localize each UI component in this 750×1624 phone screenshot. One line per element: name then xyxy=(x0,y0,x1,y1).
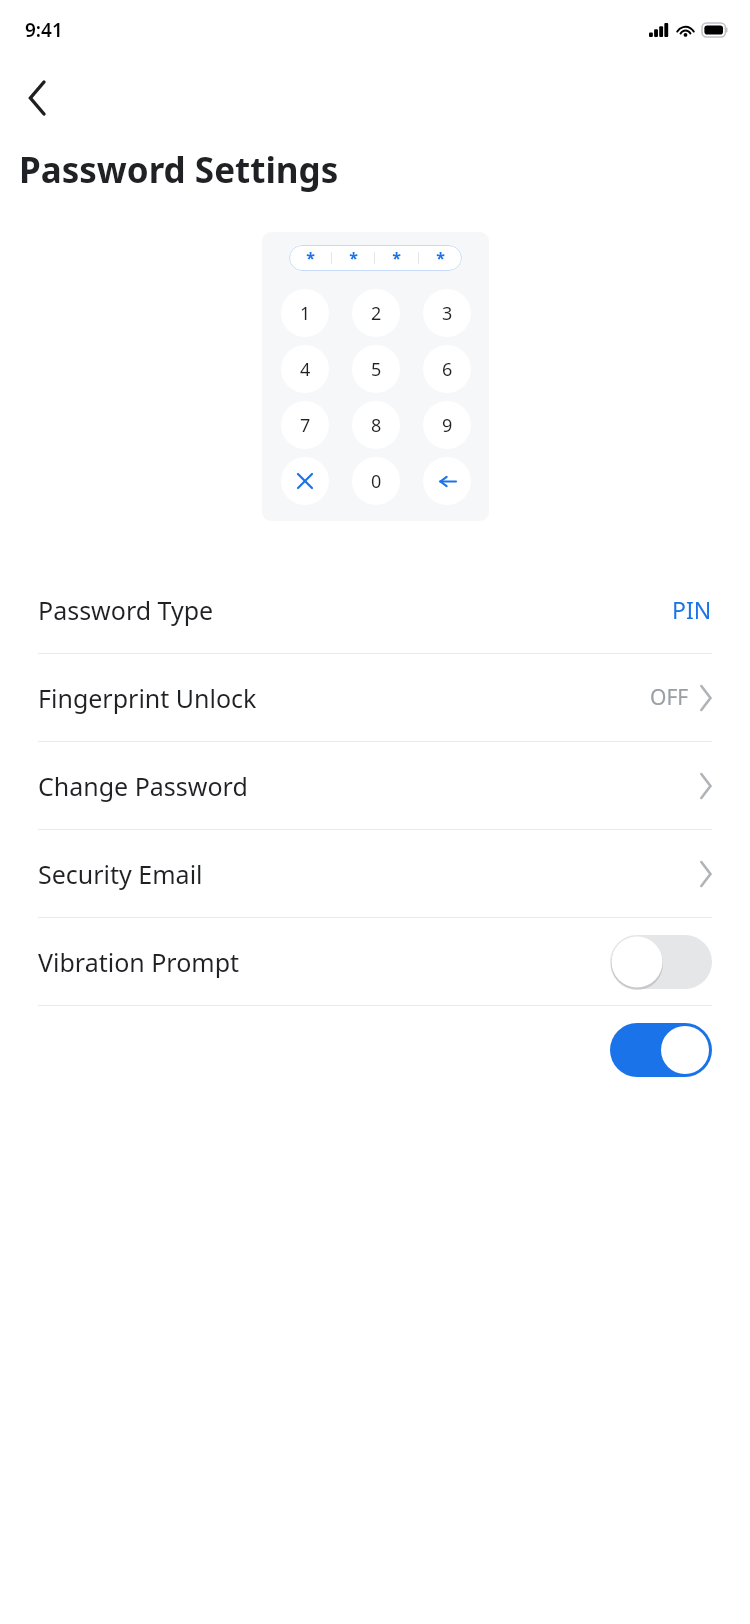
staticText: 9 xyxy=(442,413,453,438)
staticText: 5 xyxy=(371,357,382,382)
staticText: * xyxy=(349,247,358,269)
staticText: OFF xyxy=(650,683,689,712)
button[interactable]: 2 xyxy=(352,289,400,337)
staticText: 6 xyxy=(442,357,453,382)
staticText: * xyxy=(306,247,315,269)
button[interactable]: 4 xyxy=(281,345,329,393)
staticText: 2 xyxy=(371,301,382,326)
button[interactable]: Back xyxy=(12,72,64,124)
button[interactable]: Fingerprint Unlock xyxy=(0,654,750,741)
staticText: 9:41 xyxy=(25,17,63,43)
button[interactable]: 5 xyxy=(352,345,400,393)
button[interactable]: Change Password xyxy=(0,742,750,829)
button[interactable]: Toggle off xyxy=(610,935,712,989)
button[interactable]: Toggle on xyxy=(0,1006,750,1093)
button[interactable]: 1 xyxy=(281,289,329,337)
staticText: Security Email xyxy=(38,857,203,891)
button[interactable]: Backspace xyxy=(423,457,471,505)
button[interactable]: Clear xyxy=(281,457,329,505)
staticText: Fingerprint Unlock xyxy=(38,681,257,715)
button[interactable]: Vibration Prompt xyxy=(0,918,750,1005)
staticText: Password Settings xyxy=(19,146,339,194)
button[interactable]: * xyxy=(289,245,462,271)
staticText: 8 xyxy=(371,413,382,438)
staticText: 7 xyxy=(300,413,311,438)
staticText: * xyxy=(392,247,401,269)
staticText: 0 xyxy=(371,469,382,494)
staticText: 4 xyxy=(300,357,311,382)
button[interactable]: 3 xyxy=(423,289,471,337)
staticText: Vibration Prompt xyxy=(38,945,240,979)
staticText: Password Type xyxy=(38,593,214,627)
button[interactable]: Security Email xyxy=(0,830,750,917)
button[interactable]: Toggle on xyxy=(610,1023,712,1077)
staticText: * xyxy=(436,247,445,269)
staticText: 1 xyxy=(300,301,311,326)
staticText: PIN xyxy=(672,594,712,625)
button[interactable]: Password Type xyxy=(0,566,750,653)
button[interactable]: 8 xyxy=(352,401,400,449)
staticText: Change Password xyxy=(38,769,248,803)
button[interactable]: 9 xyxy=(423,401,471,449)
button[interactable]: 0 xyxy=(352,457,400,505)
button[interactable]: 6 xyxy=(423,345,471,393)
staticText: 3 xyxy=(442,301,453,326)
button[interactable]: 7 xyxy=(281,401,329,449)
